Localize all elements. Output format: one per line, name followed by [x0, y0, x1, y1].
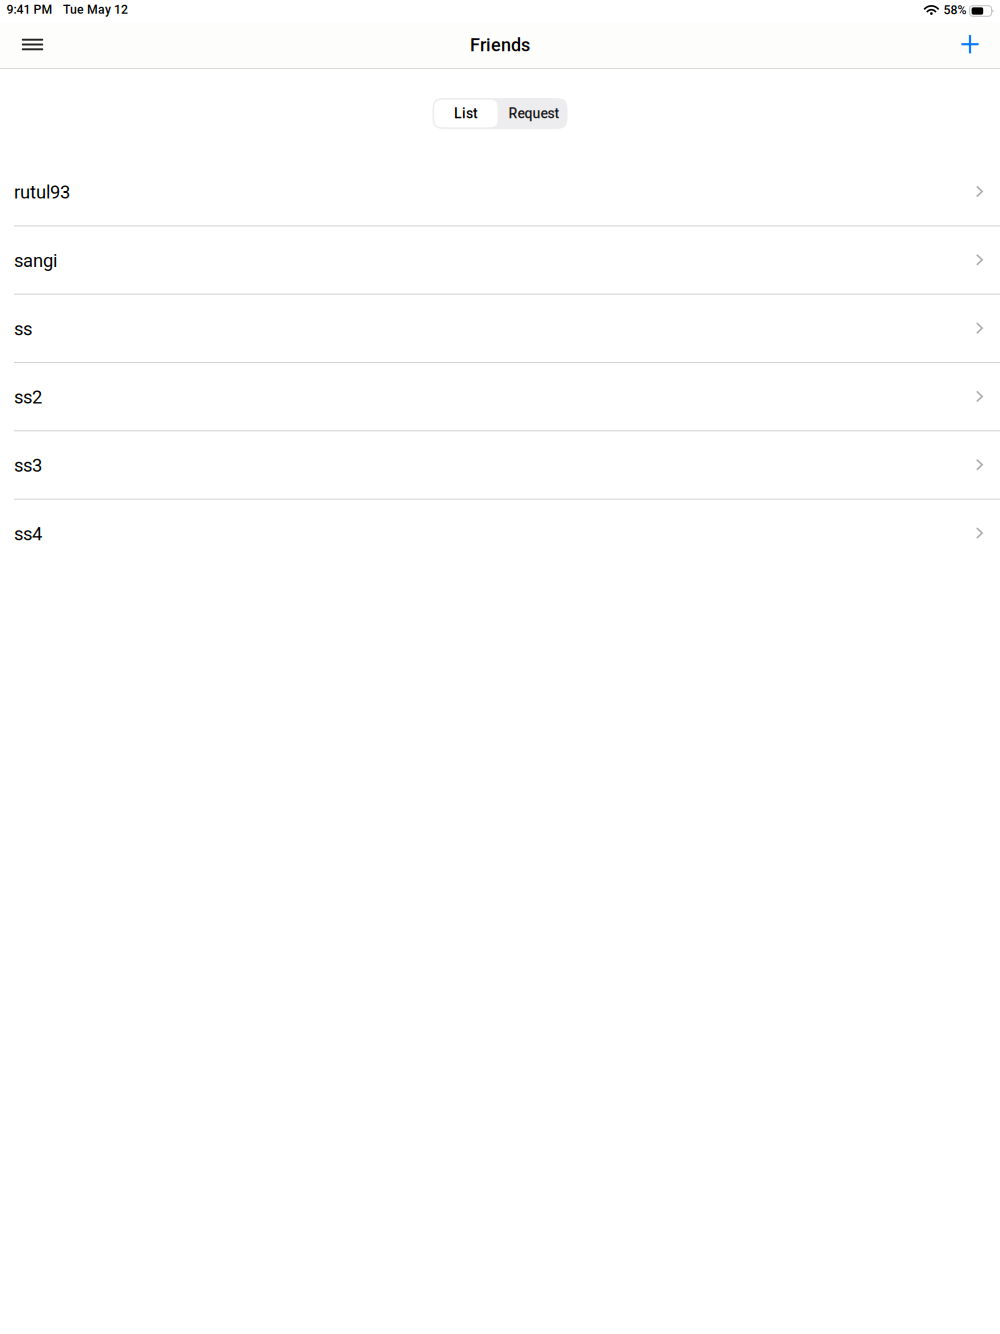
button[interactable]: List	[432, 100, 498, 127]
staticText: ss	[14, 318, 32, 340]
button[interactable]: rutul93	[0, 158, 1000, 226]
button[interactable]: ss3	[0, 431, 1000, 500]
button[interactable]: ss2	[0, 363, 1000, 431]
staticText: ss2	[14, 386, 42, 408]
staticText: 58%	[944, 3, 967, 17]
button[interactable]: Add friend	[948, 22, 992, 68]
button[interactable]: ss	[0, 295, 1000, 363]
staticText: rutul93	[14, 181, 70, 203]
staticText: Tue May 12	[63, 2, 128, 17]
button[interactable]: Menu	[10, 22, 54, 68]
staticText: Request	[509, 105, 560, 122]
staticText: List	[454, 105, 478, 122]
staticText: ss4	[14, 523, 42, 545]
staticText: Friends	[470, 34, 530, 56]
button[interactable]: sangi	[0, 226, 1000, 295]
staticText: 9:41 PM	[6, 2, 52, 17]
staticText: ss3	[14, 455, 42, 476]
staticText: sangi	[14, 250, 57, 271]
button[interactable]: ss4	[0, 500, 1000, 567]
button[interactable]: Request	[498, 100, 567, 127]
